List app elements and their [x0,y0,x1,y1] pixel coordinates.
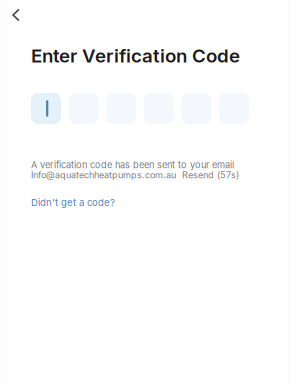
staticText: Enter Verification Code [31,44,240,67]
staticText: Didn't get a code? [31,197,115,208]
button[interactable]: Didn't get a code? [31,196,126,209]
button[interactable]: Verification digit 1 [31,93,61,124]
staticText: A verification code has been sent to you… [31,159,234,170]
staticText: Info@aquatechheatpumps.com.au Resend (57… [31,169,239,180]
button[interactable]: Back [3,2,29,28]
